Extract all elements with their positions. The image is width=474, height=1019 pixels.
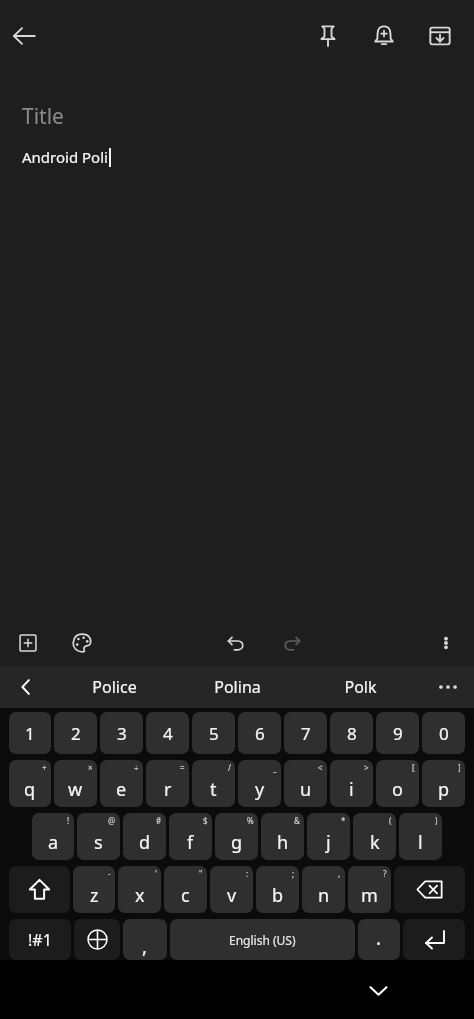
button[interactable]: 1 [9, 712, 51, 754]
button[interactable]: English (US) [170, 919, 355, 960]
staticText: m [361, 883, 378, 908]
staticText: 1 [25, 722, 35, 745]
button[interactable]: , [302, 866, 345, 913]
button[interactable]: # [123, 813, 166, 860]
button[interactable]: & [261, 813, 304, 860]
button[interactable]: More options [426, 623, 466, 663]
button[interactable]: = [146, 760, 189, 807]
button[interactable]: ÷ [100, 760, 143, 807]
staticText: Android Poli [22, 147, 108, 167]
staticText: ( [389, 815, 392, 826]
staticText: z [90, 883, 99, 908]
staticText: $ [203, 815, 208, 826]
button[interactable]: Polina [176, 666, 299, 708]
staticText: !#1 [28, 929, 52, 951]
button[interactable]: Police [52, 666, 176, 708]
button[interactable]: - [73, 866, 115, 913]
button[interactable]: Add [8, 623, 48, 663]
staticText: 5 [209, 722, 219, 745]
staticText: u [300, 777, 312, 802]
staticText: 2 [71, 722, 81, 745]
button[interactable]: Undo [216, 623, 256, 663]
button[interactable]: ( [353, 813, 396, 860]
staticText: > [364, 762, 369, 773]
staticText: @ [108, 815, 116, 826]
staticText: ÷ [134, 762, 139, 773]
staticText: p [438, 777, 450, 802]
staticText: y [255, 777, 265, 802]
button[interactable]: 4 [146, 712, 189, 754]
staticText: q [24, 777, 36, 802]
button[interactable]: 5 [192, 712, 235, 754]
button[interactable]: ; [256, 866, 299, 913]
staticText: 3 [117, 722, 127, 745]
button[interactable]: Backspace [394, 866, 465, 913]
button[interactable]: Shift [9, 866, 70, 913]
button[interactable]: $ [169, 813, 212, 860]
staticText: Police [92, 676, 137, 698]
button[interactable]: : [210, 866, 253, 913]
staticText: , [338, 868, 341, 879]
staticText: 6 [255, 722, 265, 745]
button[interactable]: < [284, 760, 327, 807]
button[interactable]: Redo [272, 623, 312, 663]
staticText: g [231, 830, 243, 855]
button[interactable]: Change language [74, 919, 120, 960]
staticText: 9 [393, 722, 403, 745]
button[interactable]: 7 [284, 712, 327, 754]
button[interactable]: Reminder [360, 12, 408, 60]
button[interactable]: " [164, 866, 207, 913]
button[interactable]: ] [422, 760, 465, 807]
staticText: 4 [163, 722, 173, 745]
button[interactable]: 2 [54, 712, 97, 754]
staticText: t [210, 777, 217, 802]
button[interactable]: _ [238, 760, 281, 807]
button[interactable]: Hide keyboard [355, 967, 401, 1013]
button[interactable]: ' [118, 866, 161, 913]
button[interactable]: Pin [304, 12, 352, 60]
staticText: f [187, 830, 194, 855]
staticText: . [376, 925, 382, 951]
button[interactable]: , [123, 919, 167, 960]
staticText: c [181, 883, 190, 908]
button[interactable]: 8 [330, 712, 373, 754]
button[interactable]: ) [399, 813, 442, 860]
button[interactable]: ! [32, 813, 74, 860]
button[interactable]: More suggestions [422, 666, 474, 708]
button[interactable]: Polk [299, 666, 422, 708]
button[interactable]: [ [376, 760, 419, 807]
staticText: e [116, 777, 127, 802]
button[interactable]: 3 [100, 712, 143, 754]
staticText: j [326, 830, 331, 855]
button[interactable]: . [358, 919, 400, 960]
button[interactable]: Colour [62, 623, 102, 663]
button[interactable]: % [215, 813, 258, 860]
staticText: v [227, 883, 237, 908]
button[interactable]: !#1 [9, 919, 71, 960]
button[interactable]: > [330, 760, 373, 807]
button[interactable]: @ [77, 813, 120, 860]
button[interactable]: 0 [422, 712, 465, 754]
button[interactable]: ? [348, 866, 391, 913]
button[interactable]: Back [0, 12, 48, 60]
staticText: Title [22, 102, 64, 131]
staticText: < [318, 762, 323, 773]
button[interactable]: Previous [0, 666, 52, 708]
staticText: + [42, 762, 47, 773]
button[interactable]: Enter [403, 919, 465, 960]
staticText: ! [67, 815, 70, 826]
staticText: / [228, 762, 231, 773]
button[interactable]: * [307, 813, 350, 860]
button[interactable]: 6 [238, 712, 281, 754]
staticText: % [247, 815, 254, 826]
staticText: * [341, 815, 346, 826]
button[interactable]: 9 [376, 712, 419, 754]
staticText: r [164, 777, 172, 802]
button[interactable]: / [192, 760, 235, 807]
button[interactable]: Archive [416, 12, 464, 60]
button[interactable]: + [9, 760, 51, 807]
staticText: i [349, 777, 354, 802]
button[interactable]: × [54, 760, 97, 807]
staticText: l [418, 830, 423, 855]
staticText: d [139, 830, 151, 855]
